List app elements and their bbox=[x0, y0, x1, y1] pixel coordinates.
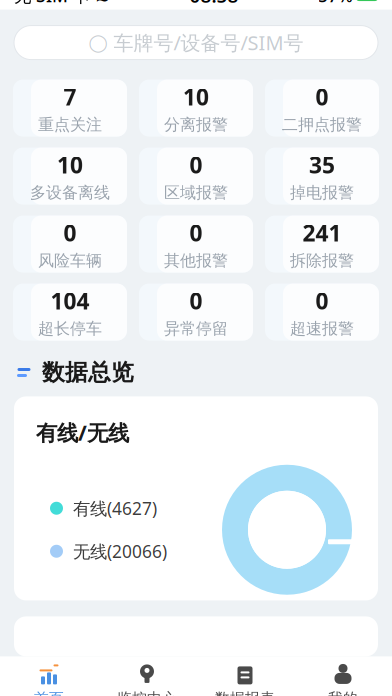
staticText: 57% bbox=[318, 0, 353, 7]
staticText: 0 bbox=[189, 150, 202, 180]
staticText: 分离报警 bbox=[164, 115, 228, 134]
staticText: ◯ bbox=[88, 33, 107, 52]
button[interactable]: 0 bbox=[13, 216, 127, 273]
button[interactable]: 0 bbox=[265, 80, 379, 137]
staticText: 0 bbox=[189, 218, 202, 248]
button[interactable]: 10 bbox=[13, 148, 127, 205]
staticText: 其他报警 bbox=[164, 251, 228, 270]
staticText: 数据报表 bbox=[215, 689, 275, 696]
staticText: 首页 bbox=[34, 689, 64, 696]
staticText: 拆除报警 bbox=[290, 251, 354, 270]
staticText: 104 bbox=[50, 286, 89, 316]
staticText: 241 bbox=[302, 218, 341, 248]
staticText: 二押点报警 bbox=[282, 115, 362, 134]
button[interactable]: 0 bbox=[265, 284, 379, 341]
button[interactable]: 0 bbox=[139, 148, 253, 205]
staticText: 掉电报警 bbox=[290, 183, 354, 202]
staticText: 0 bbox=[315, 82, 328, 112]
staticText: 风险车辆 bbox=[38, 251, 102, 270]
staticText: 数据总览 bbox=[42, 359, 134, 386]
staticText: 无线(20066) bbox=[73, 540, 167, 563]
staticText: 10 bbox=[183, 82, 209, 112]
staticText: 异常停留 bbox=[164, 319, 228, 338]
staticText: 重点关注 bbox=[38, 115, 102, 134]
staticText: 超长停车 bbox=[38, 319, 102, 338]
button[interactable]: 首页 bbox=[0, 660, 98, 696]
staticText: 车牌号/设备号/SIM号 bbox=[113, 29, 303, 56]
button[interactable]: 241 bbox=[265, 216, 379, 273]
button[interactable]: 104 bbox=[13, 284, 127, 341]
staticText: ≋ bbox=[95, 0, 110, 5]
staticText: 0 bbox=[315, 82, 328, 112]
button[interactable]: 10 bbox=[139, 80, 253, 137]
staticText: 异常停留 bbox=[164, 319, 228, 338]
staticText: 7 bbox=[63, 82, 76, 112]
staticText: 有线/无线 bbox=[36, 418, 129, 447]
staticText: 0 bbox=[63, 218, 76, 248]
staticText: 无 SIM 卡 bbox=[14, 0, 90, 7]
button[interactable]: 我的 bbox=[294, 660, 392, 696]
staticText: 其他报警 bbox=[164, 251, 228, 270]
staticText: 7 bbox=[63, 82, 76, 112]
staticText: 风险车辆 bbox=[38, 251, 102, 270]
staticText: 241 bbox=[302, 218, 341, 248]
staticText: 我的 bbox=[328, 689, 358, 696]
staticText: 104 bbox=[50, 286, 89, 316]
staticText: 超速报警 bbox=[290, 319, 354, 338]
staticText: 超长停车 bbox=[38, 319, 102, 338]
staticText: 0 bbox=[315, 286, 328, 316]
staticText: 0 bbox=[315, 286, 328, 316]
button[interactable]: 监控中心 bbox=[98, 660, 196, 696]
button[interactable]: 7 bbox=[13, 80, 127, 137]
staticText: 10 bbox=[57, 150, 83, 180]
button[interactable]: 0 bbox=[139, 284, 253, 341]
staticText: 掉电报警 bbox=[290, 183, 354, 202]
button[interactable]: 35 bbox=[265, 148, 379, 205]
button[interactable]: 0 bbox=[139, 216, 253, 273]
staticText: 监控中心 bbox=[117, 689, 177, 696]
staticText: 10 bbox=[57, 150, 83, 180]
button[interactable]: ◯ bbox=[14, 26, 378, 60]
staticText: 0 bbox=[189, 286, 202, 316]
staticText: 重点关注 bbox=[38, 115, 102, 134]
staticText: 10 bbox=[183, 82, 209, 112]
staticText: 35 bbox=[309, 150, 335, 180]
staticText: 拆除报警 bbox=[290, 251, 354, 270]
staticText: 0 bbox=[189, 150, 202, 180]
staticText: 有线(4627) bbox=[73, 497, 157, 520]
staticText: 区域报警 bbox=[164, 183, 228, 202]
staticText: 二押点报警 bbox=[282, 115, 362, 134]
staticText: 0 bbox=[63, 218, 76, 248]
staticText: 多设备离线 bbox=[30, 183, 110, 202]
staticText: 区域报警 bbox=[164, 183, 228, 202]
staticText: 08:58 bbox=[189, 0, 238, 8]
staticText: 0 bbox=[189, 286, 202, 316]
staticText: 35 bbox=[309, 150, 335, 180]
staticText: 0 bbox=[189, 218, 202, 248]
button[interactable]: 数据报表 bbox=[196, 660, 294, 696]
staticText: 超速报警 bbox=[290, 319, 354, 338]
staticText: 分离报警 bbox=[164, 115, 228, 134]
staticText: 多设备离线 bbox=[30, 183, 110, 202]
